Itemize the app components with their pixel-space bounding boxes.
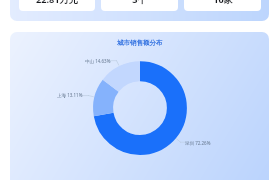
staticText: 22.81万元 bbox=[36, 0, 78, 6]
staticText: 3个 bbox=[132, 0, 147, 6]
staticText: 中山 14.63% bbox=[85, 58, 111, 64]
button[interactable]: 城市销售额分布 bbox=[10, 32, 269, 180]
button[interactable]: 10家 bbox=[184, 0, 261, 11]
staticText: 深圳 72.26% bbox=[185, 140, 211, 146]
staticText: 10家 bbox=[213, 0, 233, 6]
button[interactable]: 22.81万元 bbox=[19, 0, 95, 11]
staticText: 城市销售额分布 bbox=[117, 39, 163, 47]
button[interactable]: 3个 bbox=[101, 0, 178, 11]
staticText: 上海 13.11% bbox=[57, 92, 83, 98]
